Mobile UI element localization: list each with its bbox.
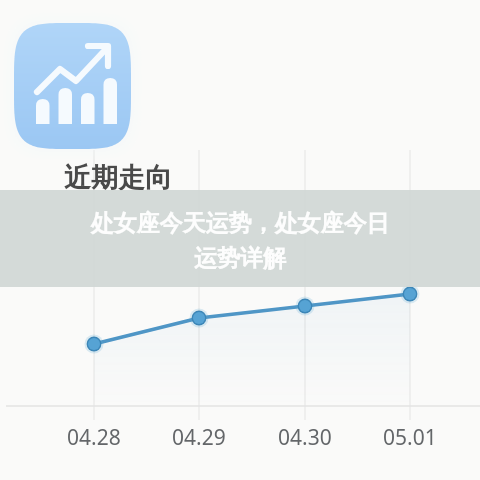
button[interactable]: 近期走向趋势图 xyxy=(0,0,480,480)
